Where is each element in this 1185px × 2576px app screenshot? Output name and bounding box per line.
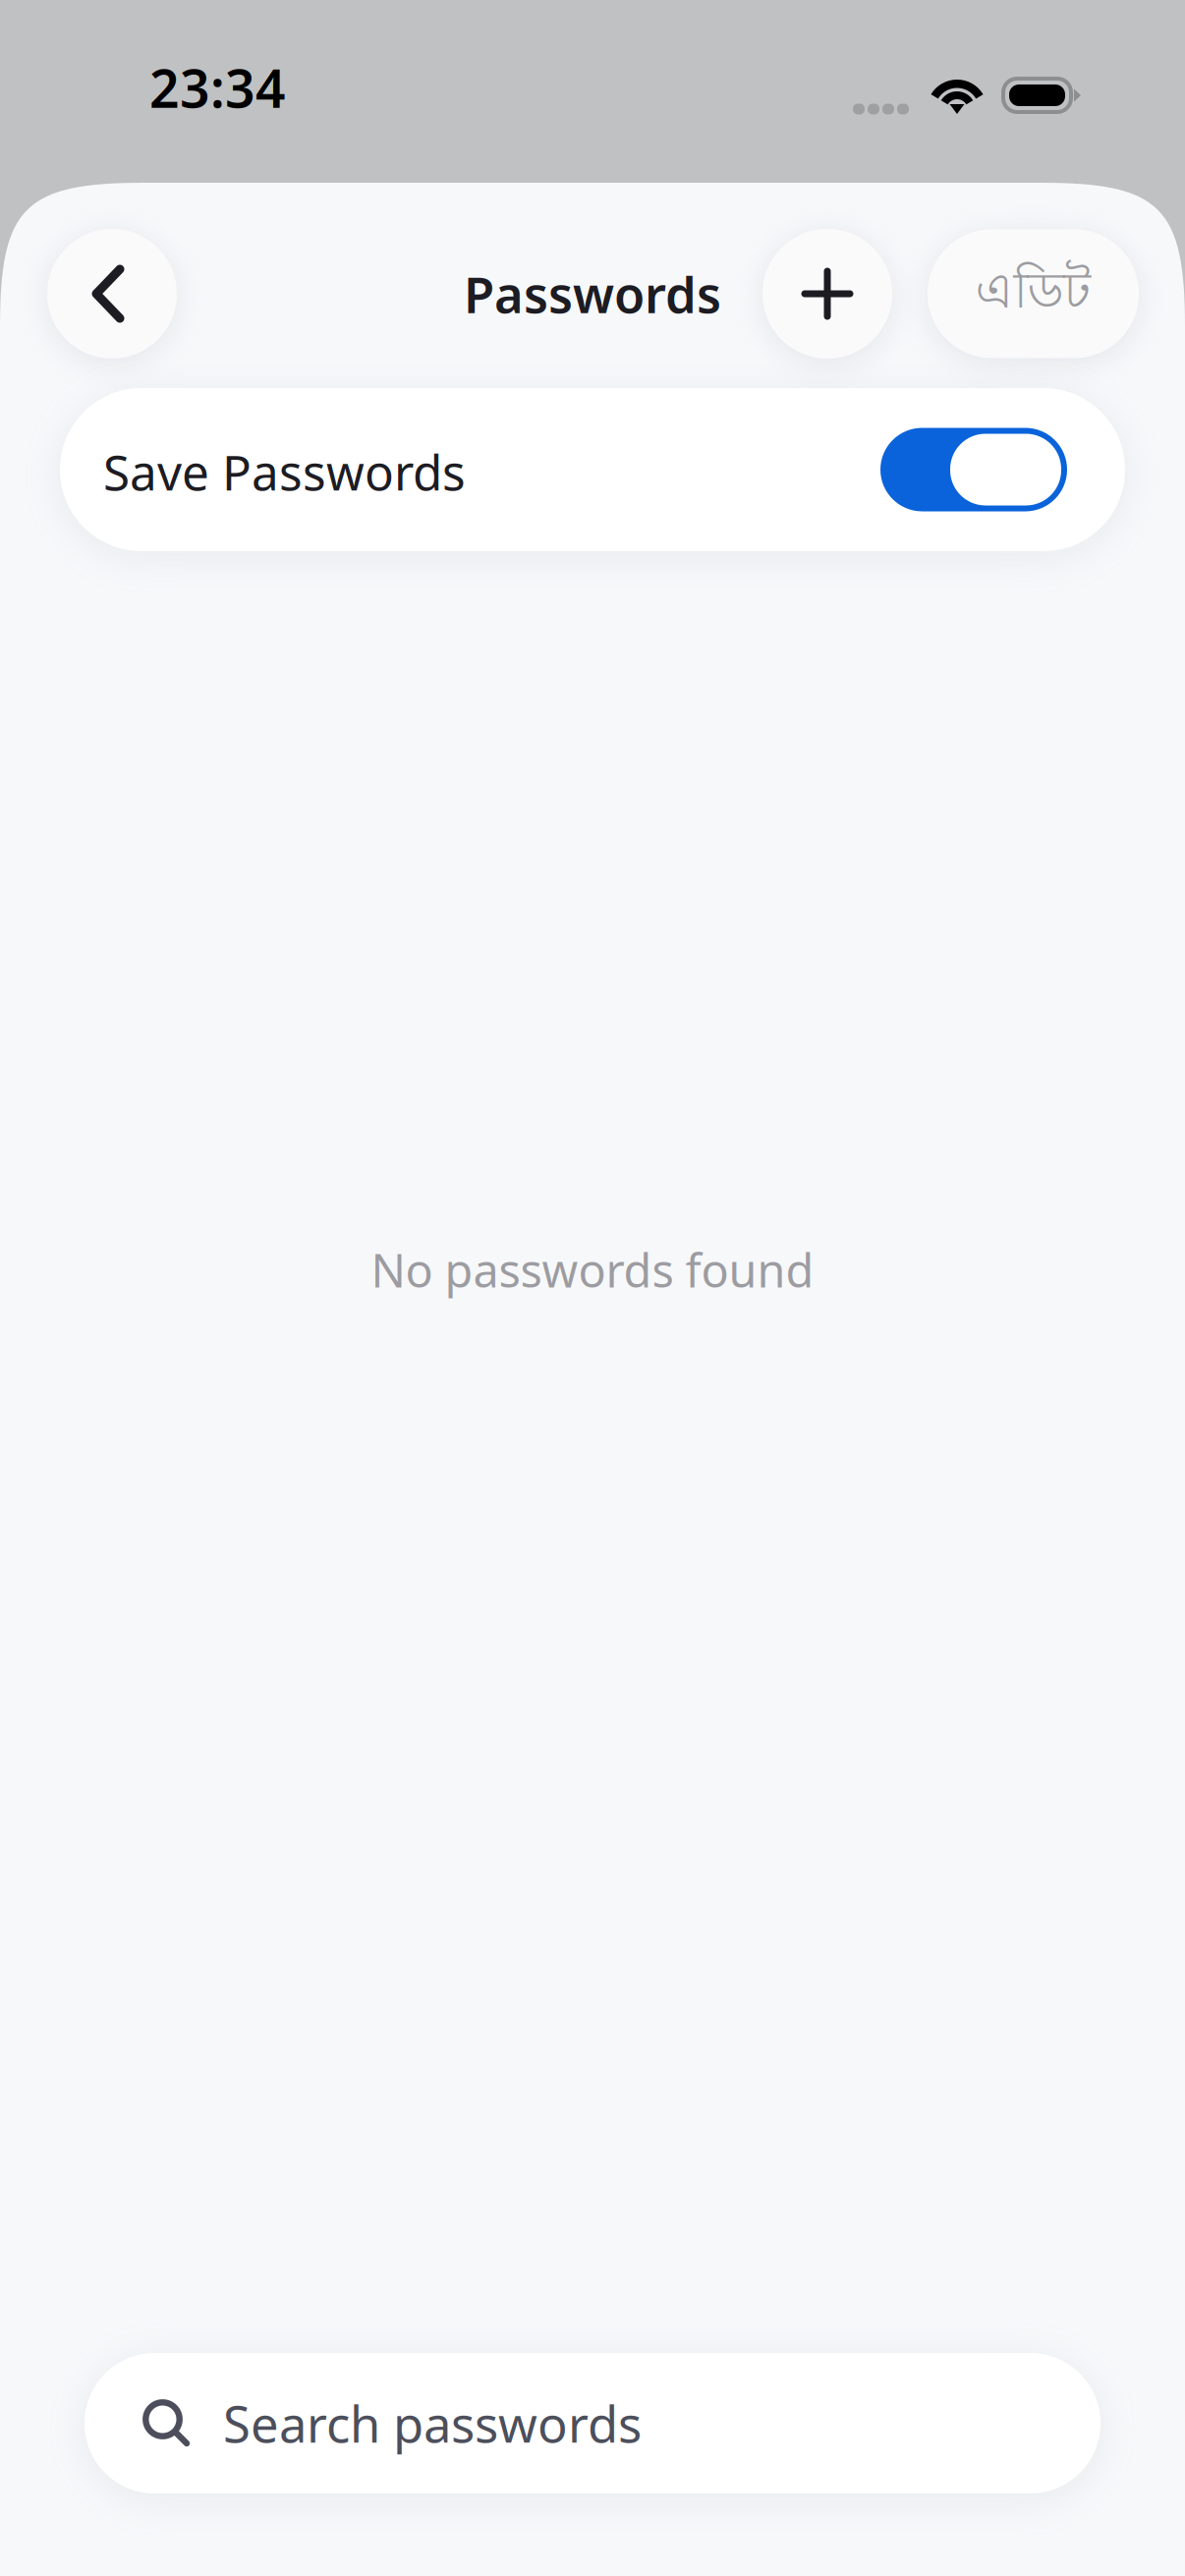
staticText: Save Passwords <box>103 439 466 504</box>
button[interactable]: Add password <box>762 229 892 359</box>
button[interactable]: Save Passwords, on <box>880 428 1067 511</box>
staticText: No passwords found <box>371 1239 814 1300</box>
button[interactable]: Search passwords <box>85 2353 1100 2493</box>
staticText: এডিট <box>975 259 1091 328</box>
staticText: Search passwords <box>223 2390 642 2456</box>
staticText: 23:34 <box>149 53 286 122</box>
staticText: Passwords <box>464 261 721 327</box>
button[interactable]: Save Passwords <box>60 388 1125 551</box>
button[interactable]: এডিট <box>928 229 1139 358</box>
button[interactable]: Back <box>47 229 177 359</box>
